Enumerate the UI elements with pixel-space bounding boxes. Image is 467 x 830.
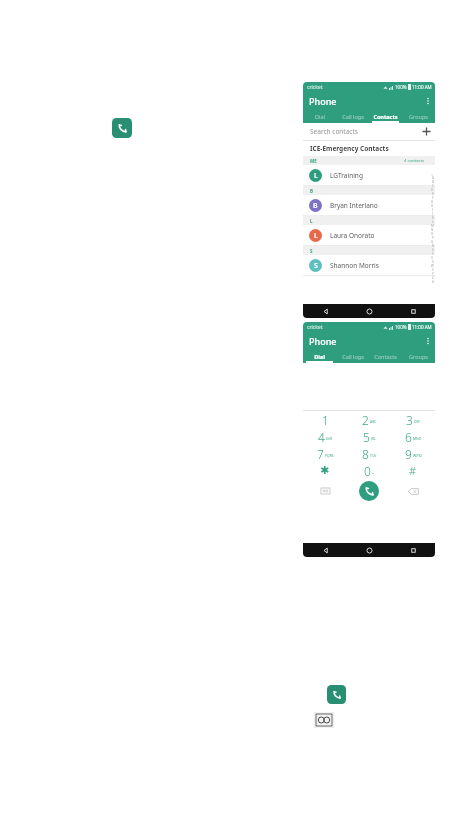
staticText: P	[432, 236, 434, 240]
staticText: 7	[317, 446, 324, 462]
staticText: Y	[432, 272, 434, 276]
staticText: S	[432, 248, 434, 252]
button[interactable]: Backspace	[391, 479, 435, 503]
button[interactable]: Back	[303, 543, 347, 557]
button[interactable]: 2	[347, 411, 391, 428]
staticText: 100%	[395, 324, 407, 330]
staticText: X	[432, 268, 434, 272]
staticText: U	[431, 256, 434, 260]
staticText: S	[310, 248, 313, 254]
button[interactable]: 7	[303, 445, 347, 462]
button[interactable]: Search contacts	[303, 123, 435, 140]
staticText: 4 contacts	[404, 158, 425, 164]
button[interactable]: Call logs	[336, 349, 369, 363]
button[interactable]: 8	[347, 445, 391, 462]
button[interactable]: Back	[303, 304, 347, 318]
staticText: 11:00 AM	[412, 324, 432, 330]
staticText: B	[313, 201, 318, 211]
button[interactable]: 4	[303, 428, 347, 445]
button[interactable]: 6	[391, 428, 435, 445]
staticText: +	[372, 470, 374, 475]
staticText: 2	[362, 412, 369, 428]
button[interactable]: Phone app	[327, 685, 346, 704]
staticText: 11:00 AM	[412, 84, 432, 90]
button[interactable]: Add contact	[418, 123, 435, 140]
staticText: 0	[364, 463, 371, 479]
button[interactable]: Recent apps	[391, 543, 435, 557]
staticText: ☆	[431, 173, 434, 176]
staticText: LGTraining	[330, 171, 363, 180]
staticText: PQRS	[325, 453, 334, 458]
button[interactable]: Voicemail	[314, 712, 334, 728]
button[interactable]: Recent apps	[391, 304, 435, 318]
staticText: K	[432, 216, 434, 220]
staticText: W	[431, 264, 434, 268]
staticText: L	[310, 218, 313, 224]
staticText: 6	[405, 429, 412, 445]
staticText: L	[314, 171, 318, 181]
staticText: 1	[322, 412, 329, 428]
staticText: R	[432, 244, 434, 248]
staticText: ICE-Emergency Contacts	[310, 144, 389, 153]
staticText: D	[431, 188, 434, 192]
staticText: TUV	[370, 453, 377, 458]
staticText: Bryan Interlano	[330, 201, 378, 210]
staticText: F	[432, 196, 434, 200]
button[interactable]: Call logs	[336, 109, 369, 123]
button[interactable]: 3	[391, 411, 435, 428]
button[interactable]: Dial	[303, 109, 336, 123]
button[interactable]: More options	[421, 334, 435, 348]
button[interactable]: Groups	[402, 349, 435, 363]
staticText: Dial	[315, 113, 325, 120]
button[interactable]: L	[303, 165, 435, 185]
staticText: Shannon Morris	[330, 261, 379, 270]
staticText: L	[314, 231, 318, 241]
button[interactable]: Home	[347, 543, 391, 557]
button[interactable]: Call	[359, 481, 379, 501]
staticText: O	[431, 232, 434, 236]
button[interactable]: Phone app	[112, 118, 132, 138]
staticText: B	[310, 188, 313, 194]
button[interactable]: 9	[391, 445, 435, 462]
staticText: GHI	[326, 436, 333, 441]
staticText: DEF	[414, 419, 421, 424]
staticText: Z	[432, 276, 434, 280]
button[interactable]: Groups	[402, 109, 435, 123]
button[interactable]: ICE-Emergency Contacts	[303, 141, 435, 156]
button[interactable]: Home	[347, 304, 391, 318]
staticText: Laura Onorato	[330, 231, 375, 240]
staticText: #	[409, 463, 417, 478]
staticText: JKL	[371, 436, 376, 441]
button[interactable]: Contacts	[369, 349, 402, 363]
button[interactable]: ✱	[303, 462, 347, 479]
staticText: ABC	[370, 419, 377, 424]
staticText: A	[432, 176, 434, 180]
staticText: T	[432, 252, 434, 256]
button[interactable]: #	[391, 462, 435, 479]
staticText: G	[431, 200, 434, 204]
button[interactable]: S	[303, 255, 435, 275]
button[interactable]: More options	[421, 94, 435, 108]
button[interactable]: Video call	[303, 479, 347, 503]
staticText: ME	[310, 158, 317, 164]
staticText: Phone	[309, 95, 337, 107]
staticText: Phone	[309, 335, 337, 347]
staticText: ✱	[320, 464, 330, 477]
staticText: L	[432, 220, 434, 224]
button[interactable]: B	[303, 195, 435, 215]
button[interactable]: 5	[347, 428, 391, 445]
button[interactable]: Dial	[303, 349, 336, 363]
staticText: WXYZ	[413, 453, 422, 458]
staticText: Contacts	[373, 113, 398, 120]
staticText: Dial	[314, 353, 325, 360]
staticText: Search contacts	[310, 127, 418, 136]
staticText: I	[432, 208, 433, 212]
button[interactable]: 1	[303, 411, 347, 428]
staticText: #	[432, 280, 434, 284]
button[interactable]: Contacts	[369, 109, 402, 123]
button[interactable]: L	[303, 225, 435, 245]
staticText: S	[314, 261, 318, 271]
button[interactable]: 0	[347, 462, 391, 479]
staticText: Groups	[409, 113, 428, 120]
